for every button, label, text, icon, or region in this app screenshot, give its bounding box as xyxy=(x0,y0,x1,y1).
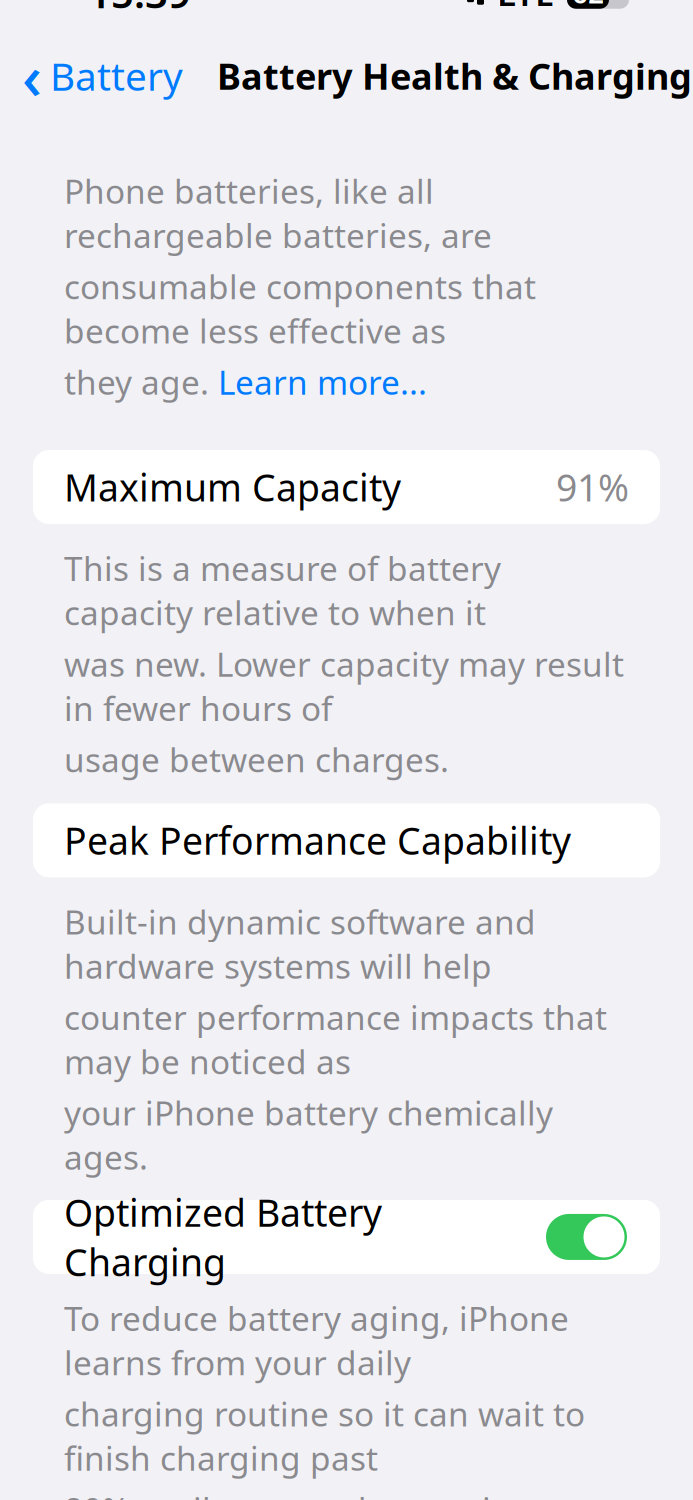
staticText: Phone batteries, like all rechargeable b… xyxy=(64,169,492,257)
staticText: usage between charges. xyxy=(64,737,449,781)
staticText: 62 xyxy=(572,0,604,11)
staticText: Battery Health & Charging xyxy=(217,52,692,100)
button[interactable]: Learn more... xyxy=(218,360,427,404)
staticText: ‹ xyxy=(22,35,42,116)
staticText: was new. Lower capacity may result in fe… xyxy=(64,642,624,730)
staticText: LTE xyxy=(497,0,554,16)
staticText: 15:39 xyxy=(88,0,191,19)
staticText: Peak Performance Capability xyxy=(64,816,571,865)
staticText: Built-in dynamic software and hardware s… xyxy=(64,899,536,988)
staticText: charging routine so it can wait to finis… xyxy=(64,1391,585,1480)
staticText: 91% xyxy=(556,462,629,512)
staticText: they age. xyxy=(64,360,218,404)
staticText: counter performance impacts that may be … xyxy=(64,995,607,1083)
button[interactable]: Optimized Battery Charging xyxy=(546,1214,627,1260)
staticText: consumable components that become less e… xyxy=(64,264,536,353)
button[interactable]: Peak Performance Capability xyxy=(33,803,660,877)
staticText: 80% until you need to use it. xyxy=(64,1487,512,1500)
staticText: your iPhone battery chemically ages. xyxy=(64,1090,553,1179)
staticText: Maximum Capacity xyxy=(64,462,401,512)
staticText: Battery xyxy=(50,50,183,101)
staticText: This is a measure of battery capacity re… xyxy=(64,546,501,634)
staticText: Optimized Battery Charging xyxy=(64,1187,382,1287)
staticText: To reduce battery aging, iPhone learns f… xyxy=(64,1296,569,1384)
button[interactable]: ‹ xyxy=(0,29,199,122)
staticText: Learn more... xyxy=(218,360,427,404)
